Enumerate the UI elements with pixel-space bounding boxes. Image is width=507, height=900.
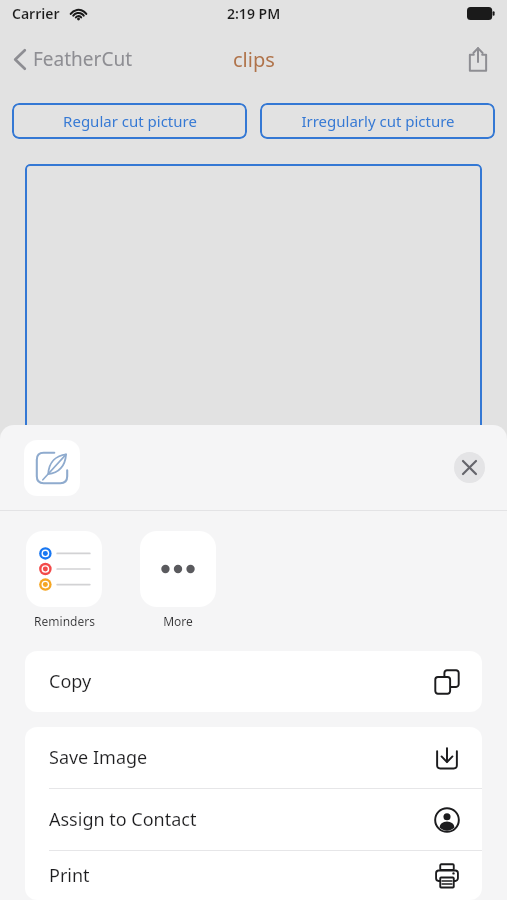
button[interactable]: Assign to Contact — [25, 789, 482, 850]
button[interactable]: Irregularly cut picture — [260, 103, 495, 139]
staticText: Print — [49, 863, 434, 888]
button[interactable]: FeatherCut app — [24, 440, 80, 496]
button[interactable]: Print — [25, 851, 482, 900]
button[interactable]: Copy — [25, 651, 482, 712]
staticText: More — [163, 613, 193, 629]
staticText: clips — [233, 46, 275, 73]
button[interactable]: Reminders — [26, 531, 102, 607]
button[interactable]: More — [140, 531, 216, 607]
button[interactable]: Save Image — [25, 727, 482, 788]
button[interactable]: Regular cut picture — [12, 103, 247, 139]
staticText: Save Image — [49, 745, 434, 770]
staticText: Regular cut picture — [63, 111, 197, 131]
button[interactable]: Share — [459, 38, 497, 80]
staticText: Carrier — [12, 4, 60, 23]
button[interactable]: FeatherCut — [0, 40, 143, 78]
button[interactable] — [25, 164, 482, 464]
staticText: FeatherCut — [33, 46, 133, 72]
staticText: Irregularly cut picture — [301, 111, 455, 131]
staticText: 2:19 PM — [227, 4, 281, 23]
button[interactable]: Close — [454, 452, 485, 483]
staticText: Copy — [49, 669, 434, 694]
staticText: Reminders — [34, 613, 95, 629]
staticText: Assign to Contact — [49, 807, 434, 832]
